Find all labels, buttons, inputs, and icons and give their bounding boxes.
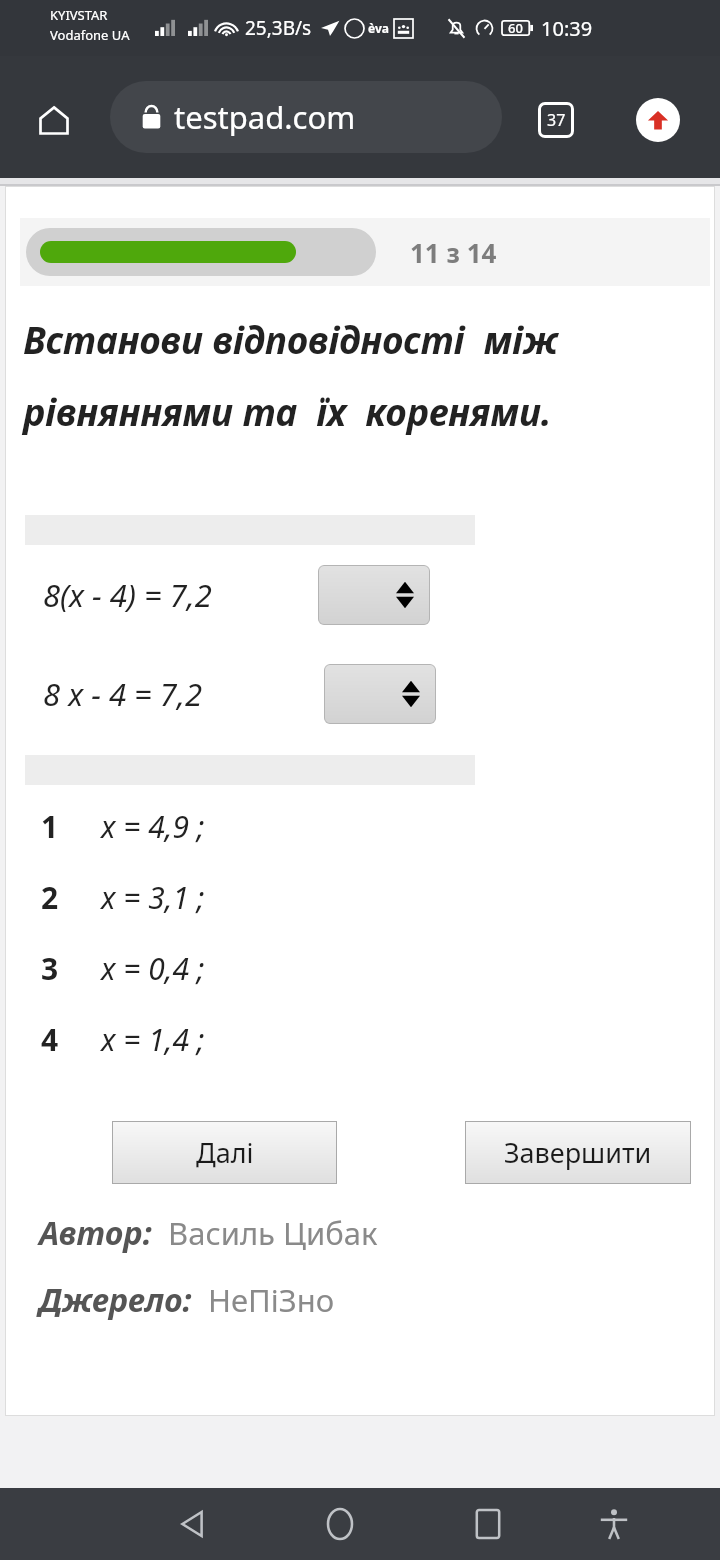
staticText: x = 3,1 ; xyxy=(101,877,205,918)
button[interactable]: Back xyxy=(160,1492,224,1556)
staticText: Василь Цибак xyxy=(168,1212,378,1254)
staticText: 10:39 xyxy=(541,15,593,42)
staticText: èva xyxy=(368,20,389,36)
button[interactable]: 3 xyxy=(5,933,715,1004)
staticText: Встанови відповідності між рівняннями та… xyxy=(23,314,655,437)
button[interactable]: Home xyxy=(26,92,82,148)
button[interactable]: 4 xyxy=(5,1004,715,1075)
staticText: Автор: xyxy=(39,1211,152,1255)
button[interactable]: Home xyxy=(308,1492,372,1556)
staticText: x = 1,4 ; xyxy=(101,1019,205,1060)
staticText: 25,3B/s xyxy=(245,15,312,41)
staticText: 37 xyxy=(547,109,566,131)
staticText: 3 xyxy=(41,948,59,989)
staticText: 1 xyxy=(41,806,59,847)
button[interactable]: Tabs xyxy=(528,92,584,148)
staticText: 11 з 14 xyxy=(410,235,497,270)
button[interactable]: Accessibility xyxy=(582,1492,646,1556)
staticText: Джерело: xyxy=(39,1278,192,1322)
staticText: 2 xyxy=(41,877,59,918)
staticText: x = 4,9 ; xyxy=(101,806,205,847)
button[interactable]: Select answer xyxy=(318,565,430,625)
button[interactable]: 1 xyxy=(5,791,715,862)
staticText: 8(x − 4) = 7,2 xyxy=(43,574,212,616)
staticText: 60 xyxy=(508,19,523,37)
button[interactable]: Далі xyxy=(112,1121,337,1184)
button[interactable]: testpad.com xyxy=(110,81,502,153)
staticText: Завершити xyxy=(504,1134,652,1171)
button[interactable]: 2 xyxy=(5,862,715,933)
button[interactable]: Menu xyxy=(630,92,686,148)
staticText: 8 x − 4 = 7,2 xyxy=(43,673,202,715)
staticText: Далі xyxy=(196,1134,254,1171)
button[interactable]: Select answer xyxy=(324,664,436,724)
staticText: 4 xyxy=(41,1019,59,1060)
staticText: Vodafone UA xyxy=(50,26,130,44)
staticText: НеПіЗно xyxy=(208,1279,335,1321)
staticText: x = 0,4 ; xyxy=(101,948,205,989)
staticText: KYIVSTAR xyxy=(50,6,108,24)
button[interactable]: Recent apps xyxy=(456,1492,520,1556)
button[interactable]: Завершити xyxy=(465,1121,691,1184)
staticText: testpad.com xyxy=(174,96,356,138)
